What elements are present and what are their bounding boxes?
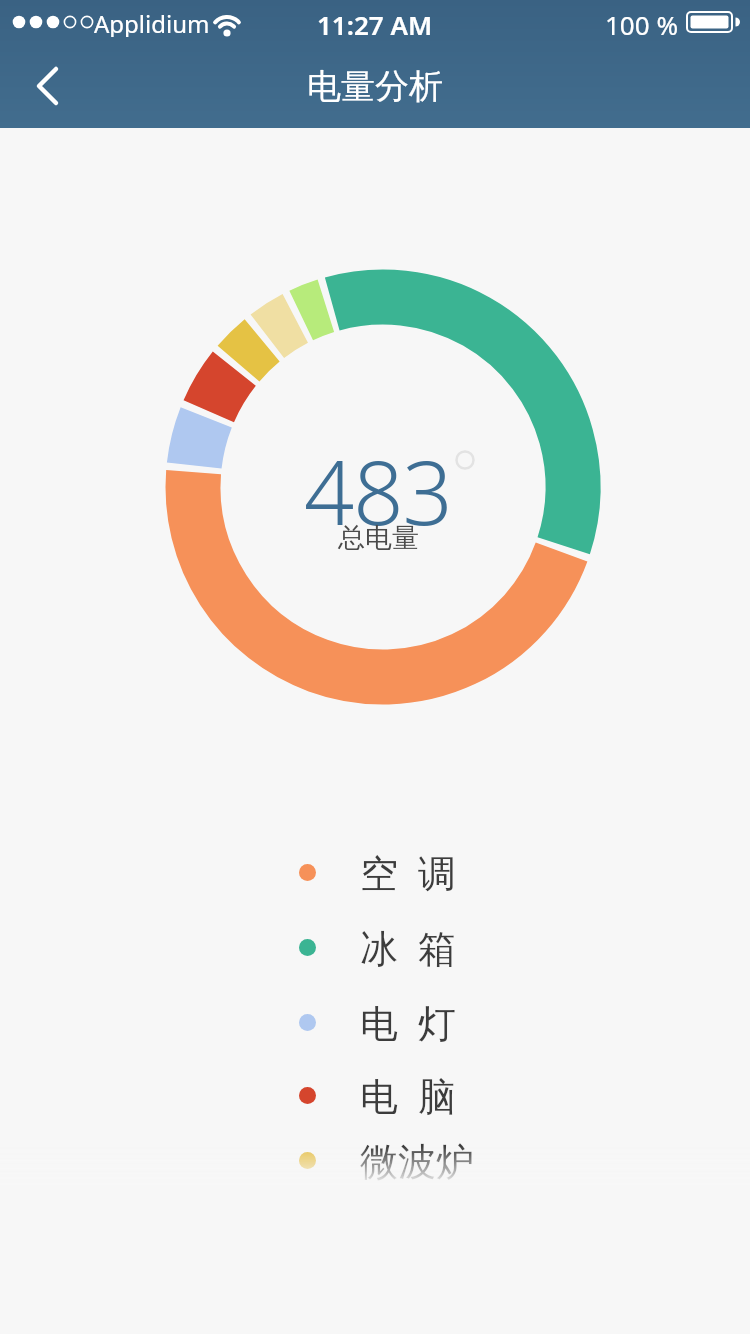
staticText: Applidium <box>94 7 210 37</box>
staticText: 电 <box>360 1073 398 1117</box>
staticText: 483 <box>304 431 452 539</box>
staticText: 空 <box>360 850 398 894</box>
button[interactable]: 电 <box>280 985 520 1059</box>
button[interactable]: 微波炉 <box>280 1123 520 1197</box>
button[interactable]: 冰 <box>280 910 520 984</box>
staticText: 电量分析 <box>307 65 443 108</box>
button[interactable]: 电 <box>280 1058 520 1132</box>
staticText: 脑 <box>418 1073 456 1117</box>
staticText: 11:27 AM <box>317 7 433 37</box>
staticText: 调 <box>418 850 456 894</box>
staticText: 100 % <box>605 7 678 37</box>
staticText: 微波炉 <box>360 1138 474 1182</box>
staticText: 灯 <box>418 1000 456 1044</box>
button[interactable] <box>20 56 80 116</box>
staticText: 电 <box>360 1000 398 1044</box>
staticText: 冰 <box>360 925 398 969</box>
button[interactable]: 空 <box>280 835 520 909</box>
staticText: 总电量 <box>338 521 419 555</box>
staticText: 箱 <box>418 925 456 969</box>
